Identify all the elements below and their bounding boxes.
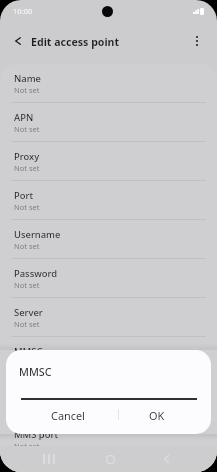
staticText: Not set	[14, 397, 40, 407]
staticText: Not set	[14, 163, 40, 173]
staticText: Port	[14, 189, 34, 202]
staticText: Edit access point	[31, 35, 120, 49]
staticText: Proxy	[14, 150, 40, 163]
staticText: Not set	[14, 124, 40, 134]
button[interactable]: Server	[0, 298, 217, 337]
staticText: Server	[14, 306, 43, 319]
staticText: MMSC	[19, 364, 52, 379]
button[interactable]: Recent apps	[36, 446, 62, 472]
staticText: Cancel	[51, 408, 85, 423]
button[interactable]: Password	[0, 259, 217, 298]
button[interactable]: APN	[0, 103, 217, 142]
button[interactable]: Proxy	[0, 142, 217, 181]
staticText: APN	[14, 111, 34, 124]
staticText: Not set	[14, 280, 40, 290]
button[interactable]: More options	[183, 27, 211, 55]
staticText: MMSC	[14, 345, 43, 358]
button[interactable]: OK	[117, 404, 197, 426]
staticText: Not set	[14, 441, 40, 451]
staticText: Not set	[14, 319, 40, 329]
staticText: Not set	[14, 241, 40, 251]
staticText: Not set	[14, 202, 40, 212]
staticText: Name	[14, 72, 41, 85]
staticText: OK	[149, 408, 165, 423]
button[interactable]: MMS port	[0, 420, 217, 459]
button[interactable]: MMS proxy	[0, 376, 217, 420]
staticText: 10:00	[13, 6, 33, 16]
staticText: MMS port	[14, 428, 58, 441]
button[interactable]: Name	[0, 64, 217, 103]
button[interactable]: Username	[0, 220, 217, 259]
staticText: Username	[14, 228, 61, 241]
button[interactable]: MMSC	[0, 337, 217, 376]
staticText: Not set	[14, 85, 40, 95]
button[interactable]: Port	[0, 181, 217, 220]
button[interactable]: Cancel	[28, 404, 107, 426]
button[interactable]: Navigate up	[4, 27, 32, 55]
staticText: Password	[14, 267, 58, 280]
